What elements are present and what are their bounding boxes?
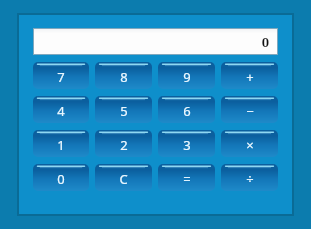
staticText: 8 [120, 68, 128, 86]
staticText: + [246, 68, 254, 86]
button[interactable]: 7 [33, 62, 89, 89]
staticText: 9 [183, 68, 191, 86]
staticText: = [183, 170, 191, 188]
button[interactable]: 9 [158, 62, 215, 89]
button[interactable]: 6 [158, 96, 215, 123]
button[interactable]: 1 [33, 130, 89, 157]
button[interactable]: 5 [95, 96, 152, 123]
button[interactable]: 3 [158, 130, 215, 157]
staticText: 4 [57, 102, 65, 120]
staticText: 6 [183, 102, 191, 120]
staticText: 1 [57, 136, 65, 154]
button[interactable]: Plus [221, 62, 278, 89]
button[interactable]: Equals [158, 164, 215, 191]
button[interactable]: Minus [221, 96, 278, 123]
button[interactable]: 4 [33, 96, 89, 123]
button[interactable]: 0 [34, 29, 277, 54]
staticText: × [246, 136, 254, 154]
staticText: 7 [57, 68, 65, 86]
staticText: ÷ [246, 170, 254, 188]
staticText: C [119, 170, 128, 188]
staticText: 5 [120, 102, 128, 120]
staticText: − [246, 102, 254, 120]
staticText: 3 [183, 136, 191, 154]
button[interactable]: Divide [221, 164, 278, 191]
staticText: 0 [57, 170, 65, 188]
staticText: 0 [261, 33, 269, 51]
button[interactable]: 8 [95, 62, 152, 89]
button[interactable]: 2 [95, 130, 152, 157]
button[interactable]: 0 [33, 164, 89, 191]
button[interactable]: Multiply [221, 130, 278, 157]
staticText: 2 [120, 136, 128, 154]
button[interactable]: Clear [95, 164, 152, 191]
